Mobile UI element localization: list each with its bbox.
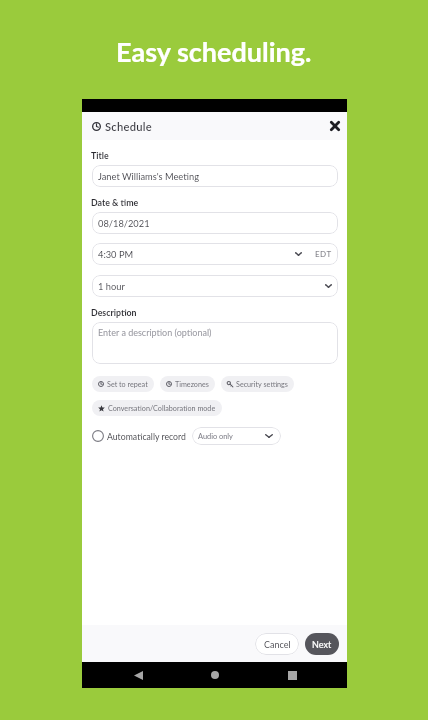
button[interactable]: Set to repeat xyxy=(92,376,154,392)
staticText: 1 hour xyxy=(98,281,125,292)
button[interactable]: Recents xyxy=(267,662,317,688)
staticText: 08/18/2021 xyxy=(98,218,150,229)
staticText: Title xyxy=(91,150,109,161)
button[interactable]: Cancel xyxy=(255,633,299,655)
staticText: Description xyxy=(91,307,137,318)
button[interactable]: Timezones xyxy=(160,376,215,392)
button[interactable]: Next xyxy=(305,633,339,655)
staticText: Audio only xyxy=(198,432,233,441)
staticText: Easy scheduling. xyxy=(116,35,312,67)
button[interactable]: Audio only xyxy=(192,427,281,445)
button[interactable]: Janet Williams's Meeting xyxy=(92,165,338,187)
staticText: Security settings xyxy=(236,380,288,389)
button[interactable]: Home xyxy=(190,662,240,688)
staticText: Set to repeat xyxy=(107,380,148,389)
button[interactable]: Security settings xyxy=(221,376,294,392)
button[interactable]: Close xyxy=(326,117,344,135)
staticText: Timezones xyxy=(175,380,209,389)
staticText: EDT xyxy=(315,249,332,259)
button[interactable]: Conversation/Collaboration mode xyxy=(92,400,222,416)
staticText: Automatically record xyxy=(107,431,186,441)
button[interactable]: Enter a description (optional) xyxy=(92,322,338,364)
staticText: Conversation/Collaboration mode xyxy=(108,404,216,413)
staticText: 4:30 PM xyxy=(98,249,134,260)
staticText: Janet Williams's Meeting xyxy=(98,171,199,182)
staticText: Schedule xyxy=(105,120,152,133)
button[interactable]: 1 hour xyxy=(92,275,338,297)
button[interactable]: Automatically record xyxy=(92,427,281,445)
button[interactable]: 08/18/2021 xyxy=(92,212,338,234)
staticText: Date & time xyxy=(91,197,139,208)
staticText: Next xyxy=(312,639,332,650)
staticText: Enter a description (optional) xyxy=(98,327,212,338)
staticText: Cancel xyxy=(264,639,291,650)
button[interactable]: Back xyxy=(113,662,163,688)
button[interactable]: 4:30 PM xyxy=(92,243,338,265)
